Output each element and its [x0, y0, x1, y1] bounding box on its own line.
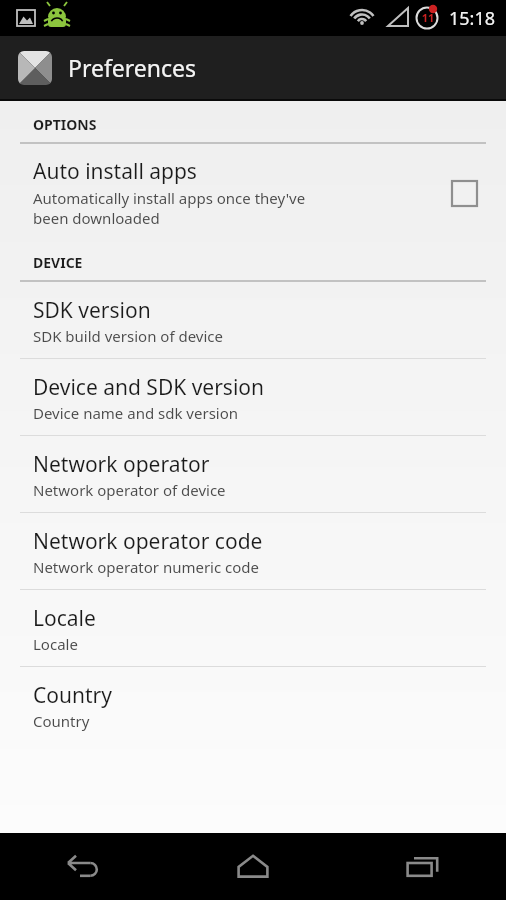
button[interactable]: SDK version [0, 282, 506, 358]
staticText: Automatically install apps once they've … [33, 188, 306, 228]
staticText: Auto install apps [33, 157, 197, 186]
staticText: Device and SDK version [33, 373, 265, 402]
staticText: 11 [420, 10, 436, 25]
staticText: OPTIONS [33, 115, 97, 134]
button[interactable]: Auto install apps [0, 144, 506, 239]
button[interactable]: Recent apps [337, 833, 506, 900]
staticText: Country [33, 681, 112, 710]
staticText: Locale [33, 604, 96, 633]
staticText: SDK build version of device [33, 326, 223, 346]
staticText: Network operator of device [33, 480, 226, 500]
staticText: Locale [33, 634, 78, 654]
button[interactable]: Country [0, 667, 506, 743]
staticText: Country [33, 711, 90, 731]
button[interactable]: Network operator code [0, 513, 506, 589]
other: Auto install apps toggle [442, 171, 486, 215]
staticText: Network operator [33, 450, 210, 479]
staticText: SDK version [33, 296, 151, 325]
button[interactable]: Device and SDK version [0, 359, 506, 435]
button[interactable]: Back [0, 833, 168, 900]
staticText: Device name and sdk version [33, 403, 239, 423]
button[interactable]: Preferences [0, 36, 506, 99]
staticText: Preferences [68, 52, 197, 83]
staticText: DEVICE [33, 253, 83, 272]
staticText: Network operator numeric code [33, 557, 260, 577]
staticText: Network operator code [33, 527, 263, 556]
button[interactable]: Network operator [0, 436, 506, 512]
staticText: 15:18 [449, 6, 496, 31]
button[interactable]: Locale [0, 590, 506, 666]
button[interactable]: Home [168, 833, 337, 900]
